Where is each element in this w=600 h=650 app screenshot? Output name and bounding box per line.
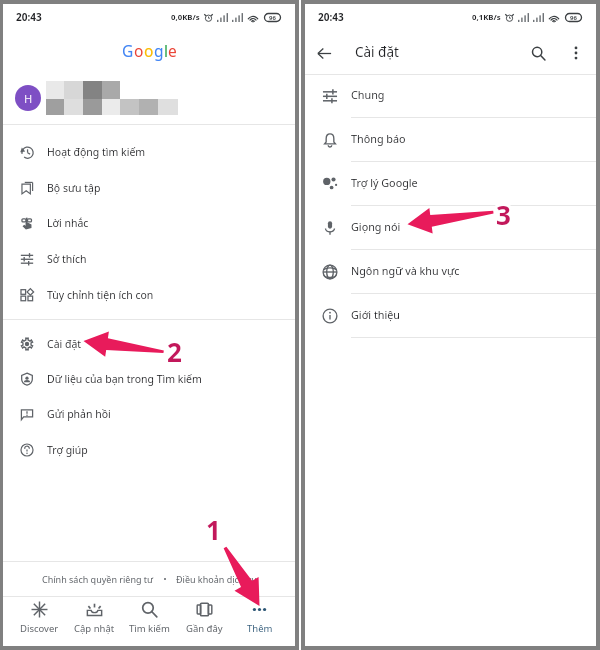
staticText: 3: [496, 198, 511, 233]
button[interactable]: Chung: [305, 74, 596, 118]
staticText: 2: [167, 337, 182, 372]
button[interactable]: Discover: [11, 593, 67, 643]
staticText: 2: [166, 335, 181, 370]
staticText: 2: [166, 334, 181, 369]
staticText: 3: [496, 197, 511, 232]
button[interactable]: Chính sách quyền riêng tư: [42, 573, 154, 585]
staticText: 3: [496, 195, 511, 230]
staticText: Chính sách quyền riêng tư: [42, 573, 154, 585]
staticText: 3: [495, 199, 510, 234]
button[interactable]: Sở thích: [3, 241, 295, 277]
staticText: 1: [207, 512, 222, 547]
button[interactable]: Trợ lý Google: [305, 162, 596, 206]
staticText: 96: [570, 14, 577, 22]
staticText: Điều khoản dịch vụ: [176, 573, 257, 585]
staticText: 2: [168, 336, 183, 371]
button[interactable]: Giọng nói: [305, 206, 596, 250]
staticText: Tìm kiếm: [129, 622, 170, 635]
staticText: Chung: [351, 87, 385, 102]
button[interactable]: Cập nhật: [67, 593, 122, 643]
staticText: Gần đây: [186, 622, 223, 635]
button[interactable]: More options: [557, 34, 595, 72]
staticText: 3: [497, 196, 512, 231]
staticText: Sở thích: [47, 252, 87, 266]
staticText: 3: [498, 195, 513, 230]
staticText: 3: [494, 198, 509, 233]
button[interactable]: Hoạt động tìm kiếm: [3, 134, 295, 170]
button[interactable]: Cài đặt: [3, 326, 295, 362]
staticText: 3: [496, 200, 511, 235]
staticText: 1: [208, 510, 223, 545]
button[interactable]: Gần đây: [177, 593, 232, 643]
staticText: 1: [205, 512, 220, 547]
staticText: 2: [167, 334, 182, 369]
staticText: 1: [206, 512, 221, 547]
staticText: 1: [204, 510, 219, 545]
staticText: 3: [496, 196, 511, 231]
staticText: 2: [169, 332, 184, 367]
staticText: 1: [204, 511, 219, 546]
staticText: 3: [494, 196, 509, 231]
button[interactable]: Giới thiệu: [305, 294, 596, 338]
staticText: 3: [495, 198, 510, 233]
staticText: 2: [165, 335, 180, 370]
button[interactable]: Tìm kiếm: [122, 593, 177, 643]
staticText: 3: [496, 194, 511, 229]
staticText: 1: [203, 512, 218, 547]
staticText: 2: [168, 335, 183, 370]
staticText: 1: [207, 514, 222, 549]
staticText: 1: [205, 511, 220, 546]
button[interactable]: Dữ liệu của bạn trong Tìm kiếm: [3, 361, 295, 397]
staticText: 20:43: [318, 10, 344, 24]
staticText: 3: [495, 195, 510, 230]
staticText: Giọng nói: [351, 219, 401, 234]
staticText: 3: [499, 197, 514, 232]
staticText: 3: [498, 199, 513, 234]
staticText: 2: [167, 331, 182, 366]
staticText: 1: [207, 513, 222, 548]
staticText: Cài đặt: [355, 43, 399, 61]
button[interactable]: Thông báo: [305, 118, 596, 162]
button[interactable]: Back: [305, 34, 343, 72]
button[interactable]: Bộ sưu tập: [3, 170, 295, 206]
staticText: 2: [168, 333, 183, 368]
staticText: 2: [165, 334, 180, 369]
staticText: G: [122, 40, 134, 61]
staticText: 3: [497, 198, 512, 233]
button[interactable]: Lời nhắc: [3, 205, 295, 241]
staticText: 2: [167, 333, 182, 368]
staticText: 2: [166, 336, 181, 371]
staticText: 1: [206, 510, 221, 545]
staticText: Giới thiệu: [351, 307, 401, 322]
staticText: 1: [205, 513, 220, 548]
staticText: Dữ liệu của bạn trong Tìm kiếm: [47, 372, 202, 386]
button[interactable]: Search: [519, 34, 557, 72]
staticText: Cập nhật: [74, 622, 115, 635]
staticText: 2: [166, 332, 181, 367]
staticText: 1: [206, 514, 221, 549]
staticText: 3: [494, 199, 509, 234]
button[interactable]: Thêm: [232, 593, 287, 643]
staticText: 2: [169, 333, 184, 368]
staticText: 1: [207, 510, 222, 545]
staticText: Ngôn ngữ và khu vực: [351, 263, 460, 278]
staticText: Gửi phản hồi: [47, 407, 111, 421]
button[interactable]: Gửi phản hồi: [3, 396, 295, 432]
staticText: 1: [205, 510, 220, 545]
staticText: 2: [166, 333, 181, 368]
staticText: Thêm: [247, 622, 273, 635]
button[interactable]: Điều khoản dịch vụ: [176, 573, 257, 585]
staticText: 1: [208, 513, 223, 548]
button[interactable]: Ngôn ngữ và khu vực: [305, 250, 596, 294]
staticText: Hoạt động tìm kiếm: [47, 145, 146, 159]
button[interactable]: Tùy chỉnh tiện ích con: [3, 277, 295, 313]
staticText: Trợ lý Google: [351, 175, 418, 190]
staticText: 3: [497, 195, 512, 230]
button[interactable]: Trợ giúp: [3, 432, 295, 468]
button[interactable]: H: [3, 78, 295, 118]
staticText: 2: [165, 336, 180, 371]
staticText: 2: [167, 336, 182, 371]
staticText: 3: [495, 196, 510, 231]
staticText: 3: [498, 197, 513, 232]
staticText: o: [144, 40, 154, 61]
